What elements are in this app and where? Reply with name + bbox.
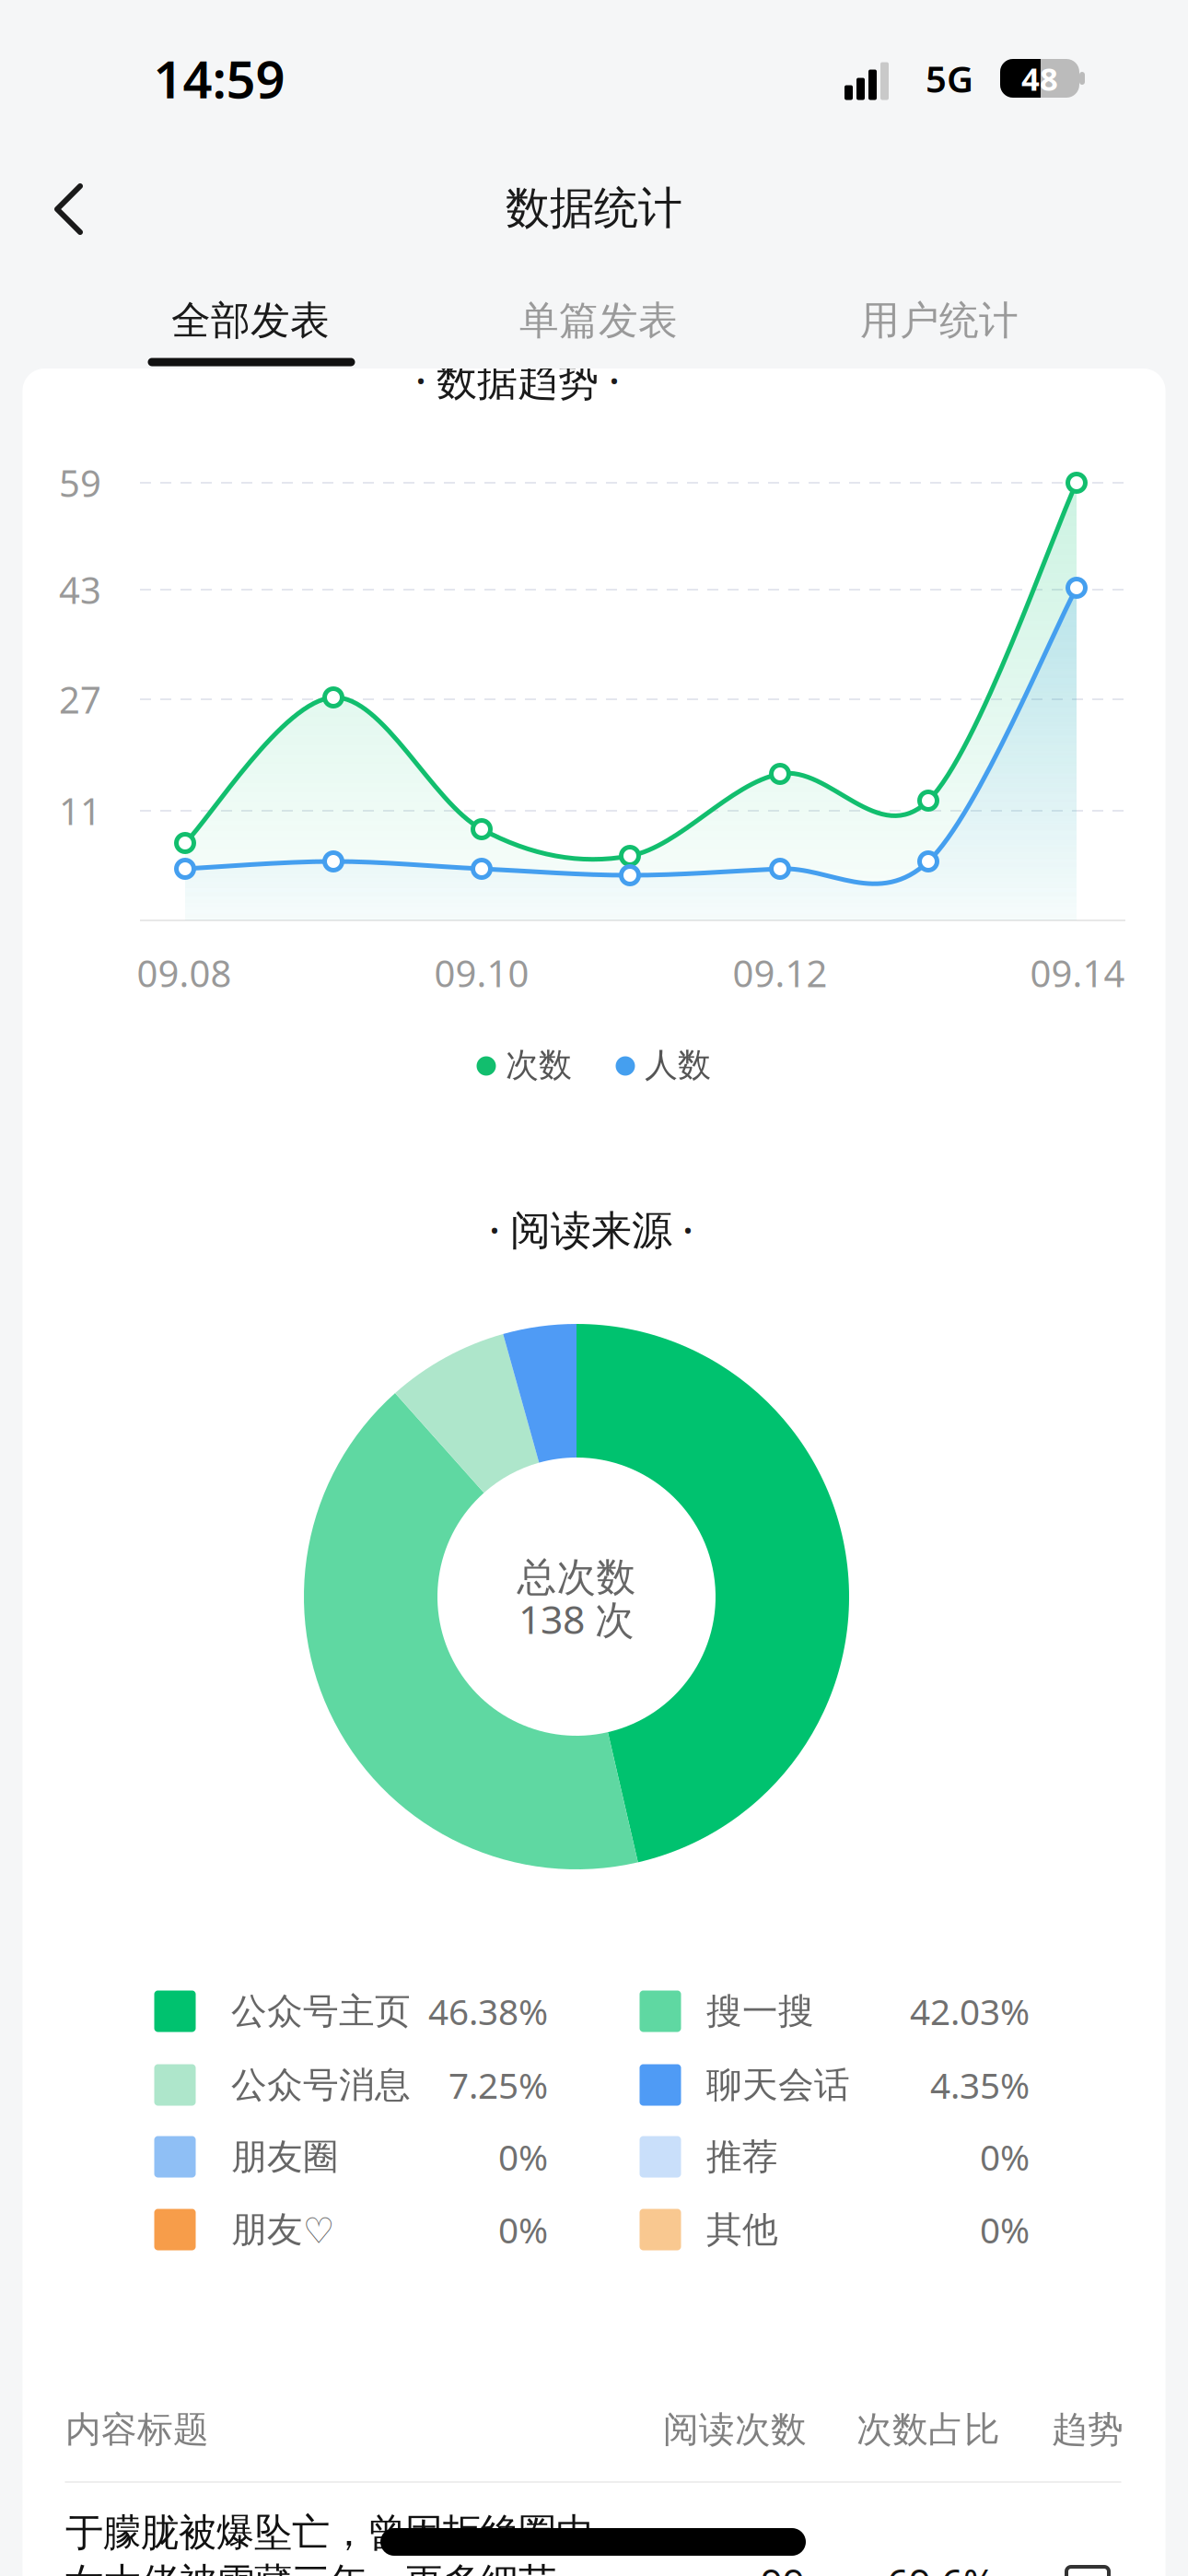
staticText: 42.03% [910, 1988, 1030, 2035]
staticText: 0% [980, 2206, 1030, 2253]
staticText: 阅读次数 [663, 2408, 807, 2451]
staticText: 09.08 [137, 948, 232, 997]
staticText: 全部发表 [171, 296, 330, 345]
staticText: 用户统计 [860, 296, 1019, 345]
staticText: 09.10 [434, 948, 529, 997]
staticText: 朋友♡ [231, 2208, 335, 2252]
staticText: 09.14 [1030, 948, 1125, 997]
staticText: 59 [59, 458, 101, 507]
staticText: 99 [761, 2557, 805, 2576]
staticText: 其他 [706, 2208, 778, 2252]
staticText: 69.6% [887, 2557, 995, 2576]
staticText: 聊天会话 [706, 2063, 850, 2107]
staticText: 27 [59, 675, 101, 724]
staticText: 48 [1021, 57, 1058, 100]
staticText: 公众号消息 [231, 2063, 411, 2107]
button[interactable]: 单篇发表 [519, 296, 678, 345]
staticText: 4.35% [930, 2061, 1030, 2109]
staticText: 46.38% [428, 1988, 548, 2035]
staticText: 11 [59, 786, 101, 835]
staticText: 人数 [645, 1045, 711, 1085]
button[interactable]: 用户统计 [860, 296, 1019, 345]
staticText: 搜一搜 [706, 1989, 814, 2033]
button[interactable]: Back [50, 180, 90, 239]
staticText: 5G [926, 54, 973, 103]
staticText: 内容标题 [65, 2408, 209, 2451]
staticText: 次数占比 [856, 2408, 1000, 2451]
staticText: 次数 [506, 1045, 572, 1085]
staticText: 138 次 [518, 1593, 635, 1645]
staticText: 0% [980, 2133, 1030, 2180]
staticText: 43 [59, 565, 101, 614]
staticText: · 数据趋势 · [415, 353, 620, 406]
staticText: 0% [498, 2133, 548, 2180]
staticText: 数据统计 [506, 181, 682, 235]
staticText: 总次数 [517, 1553, 636, 1601]
staticText: · 阅读来源 · [489, 1202, 693, 1256]
staticText: 于朦胧被爆坠亡，曾因拒绝圈中 [65, 2509, 594, 2556]
staticText: 女大佬被雪藏三年，更多细节 [65, 2559, 556, 2576]
staticText: 0% [498, 2206, 548, 2253]
staticText: 朋友圈 [231, 2135, 339, 2179]
staticText: 7.25% [448, 2061, 548, 2109]
button[interactable]: 于朦胧被爆坠亡，曾因拒绝圈中 [65, 2521, 1123, 2576]
staticText: 09.12 [733, 948, 827, 997]
staticText: 趋势 [1052, 2408, 1124, 2451]
staticText: 14:59 [153, 44, 285, 113]
staticText: 公众号主页 [231, 1989, 411, 2033]
staticText: 单篇发表 [519, 296, 678, 345]
button[interactable]: 全部发表 [171, 296, 330, 345]
staticText: 推荐 [706, 2135, 778, 2179]
